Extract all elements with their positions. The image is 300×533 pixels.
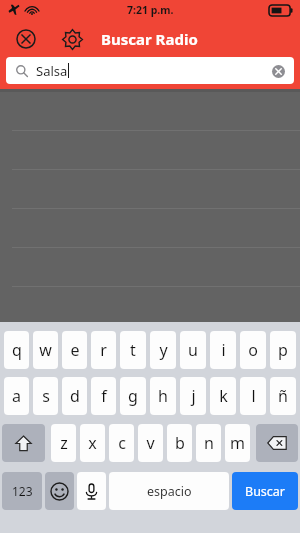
staticText: f: [101, 385, 107, 407]
staticText: 7:21 p.m.: [127, 3, 174, 17]
staticText: x: [88, 432, 97, 454]
staticText: b: [175, 432, 185, 454]
button[interactable]: t: [120, 331, 146, 369]
staticText: Buscar Radio: [101, 29, 198, 49]
button[interactable]: Dictado: [77, 472, 106, 510]
button[interactable]: r: [91, 331, 116, 369]
button[interactable]: Salsa: [6, 57, 294, 84]
button[interactable]: l: [240, 377, 266, 415]
button[interactable]: y: [150, 331, 176, 369]
staticText: ñ: [278, 385, 288, 407]
button[interactable]: j: [180, 377, 206, 415]
button[interactable]: q: [4, 331, 29, 369]
button[interactable]: n: [196, 424, 221, 462]
button[interactable]: u: [180, 331, 206, 369]
button[interactable]: g: [120, 377, 146, 415]
staticText: v: [146, 432, 155, 454]
button[interactable]: b: [167, 424, 192, 462]
staticText: q: [12, 339, 22, 361]
button[interactable]: o: [240, 331, 266, 369]
button[interactable]: s: [33, 377, 58, 415]
staticText: z: [60, 432, 68, 454]
button[interactable]: Borrar: [256, 424, 298, 462]
button[interactable]: 123: [2, 472, 42, 510]
staticText: g: [128, 385, 138, 407]
staticText: l: [251, 385, 256, 407]
button[interactable]: a: [4, 377, 29, 415]
button[interactable]: Buscar: [232, 472, 298, 510]
button[interactable]: ñ: [270, 377, 296, 415]
staticText: m: [230, 432, 245, 454]
button[interactable]: c: [109, 424, 134, 462]
button[interactable]: x: [80, 424, 105, 462]
button[interactable]: espacio: [109, 472, 229, 510]
staticText: r: [100, 339, 107, 361]
staticText: k: [219, 385, 228, 407]
staticText: Buscar: [245, 483, 286, 500]
staticText: y: [159, 339, 168, 361]
button[interactable]: p: [270, 331, 296, 369]
staticText: s: [42, 385, 50, 407]
button[interactable]: m: [225, 424, 250, 462]
button[interactable]: Emoji: [45, 472, 74, 510]
button[interactable]: v: [138, 424, 163, 462]
staticText: n: [204, 432, 214, 454]
button[interactable]: Ajustes: [57, 24, 87, 54]
staticText: o: [248, 339, 258, 361]
staticText: Salsa: [36, 62, 68, 80]
button[interactable]: f: [91, 377, 116, 415]
staticText: c: [118, 432, 126, 454]
button[interactable]: w: [33, 331, 58, 369]
button[interactable]: d: [62, 377, 87, 415]
button[interactable]: e: [62, 331, 87, 369]
button[interactable]: k: [210, 377, 236, 415]
staticText: 123: [12, 483, 33, 499]
staticText: e: [70, 339, 80, 361]
button[interactable]: Mayúsculas: [2, 424, 45, 462]
staticText: d: [70, 385, 80, 407]
button[interactable]: z: [51, 424, 76, 462]
staticText: h: [158, 385, 168, 407]
staticText: w: [39, 339, 52, 361]
staticText: a: [12, 385, 21, 407]
button[interactable]: i: [210, 331, 236, 369]
staticText: j: [191, 385, 196, 407]
staticText: i: [221, 339, 226, 361]
staticText: espacio: [147, 483, 192, 500]
button[interactable]: h: [150, 377, 176, 415]
staticText: t: [130, 339, 136, 361]
staticText: p: [278, 339, 288, 361]
staticText: u: [188, 339, 198, 361]
button[interactable]: Borrar texto: [270, 63, 286, 79]
button[interactable]: Cerrar: [11, 24, 41, 54]
